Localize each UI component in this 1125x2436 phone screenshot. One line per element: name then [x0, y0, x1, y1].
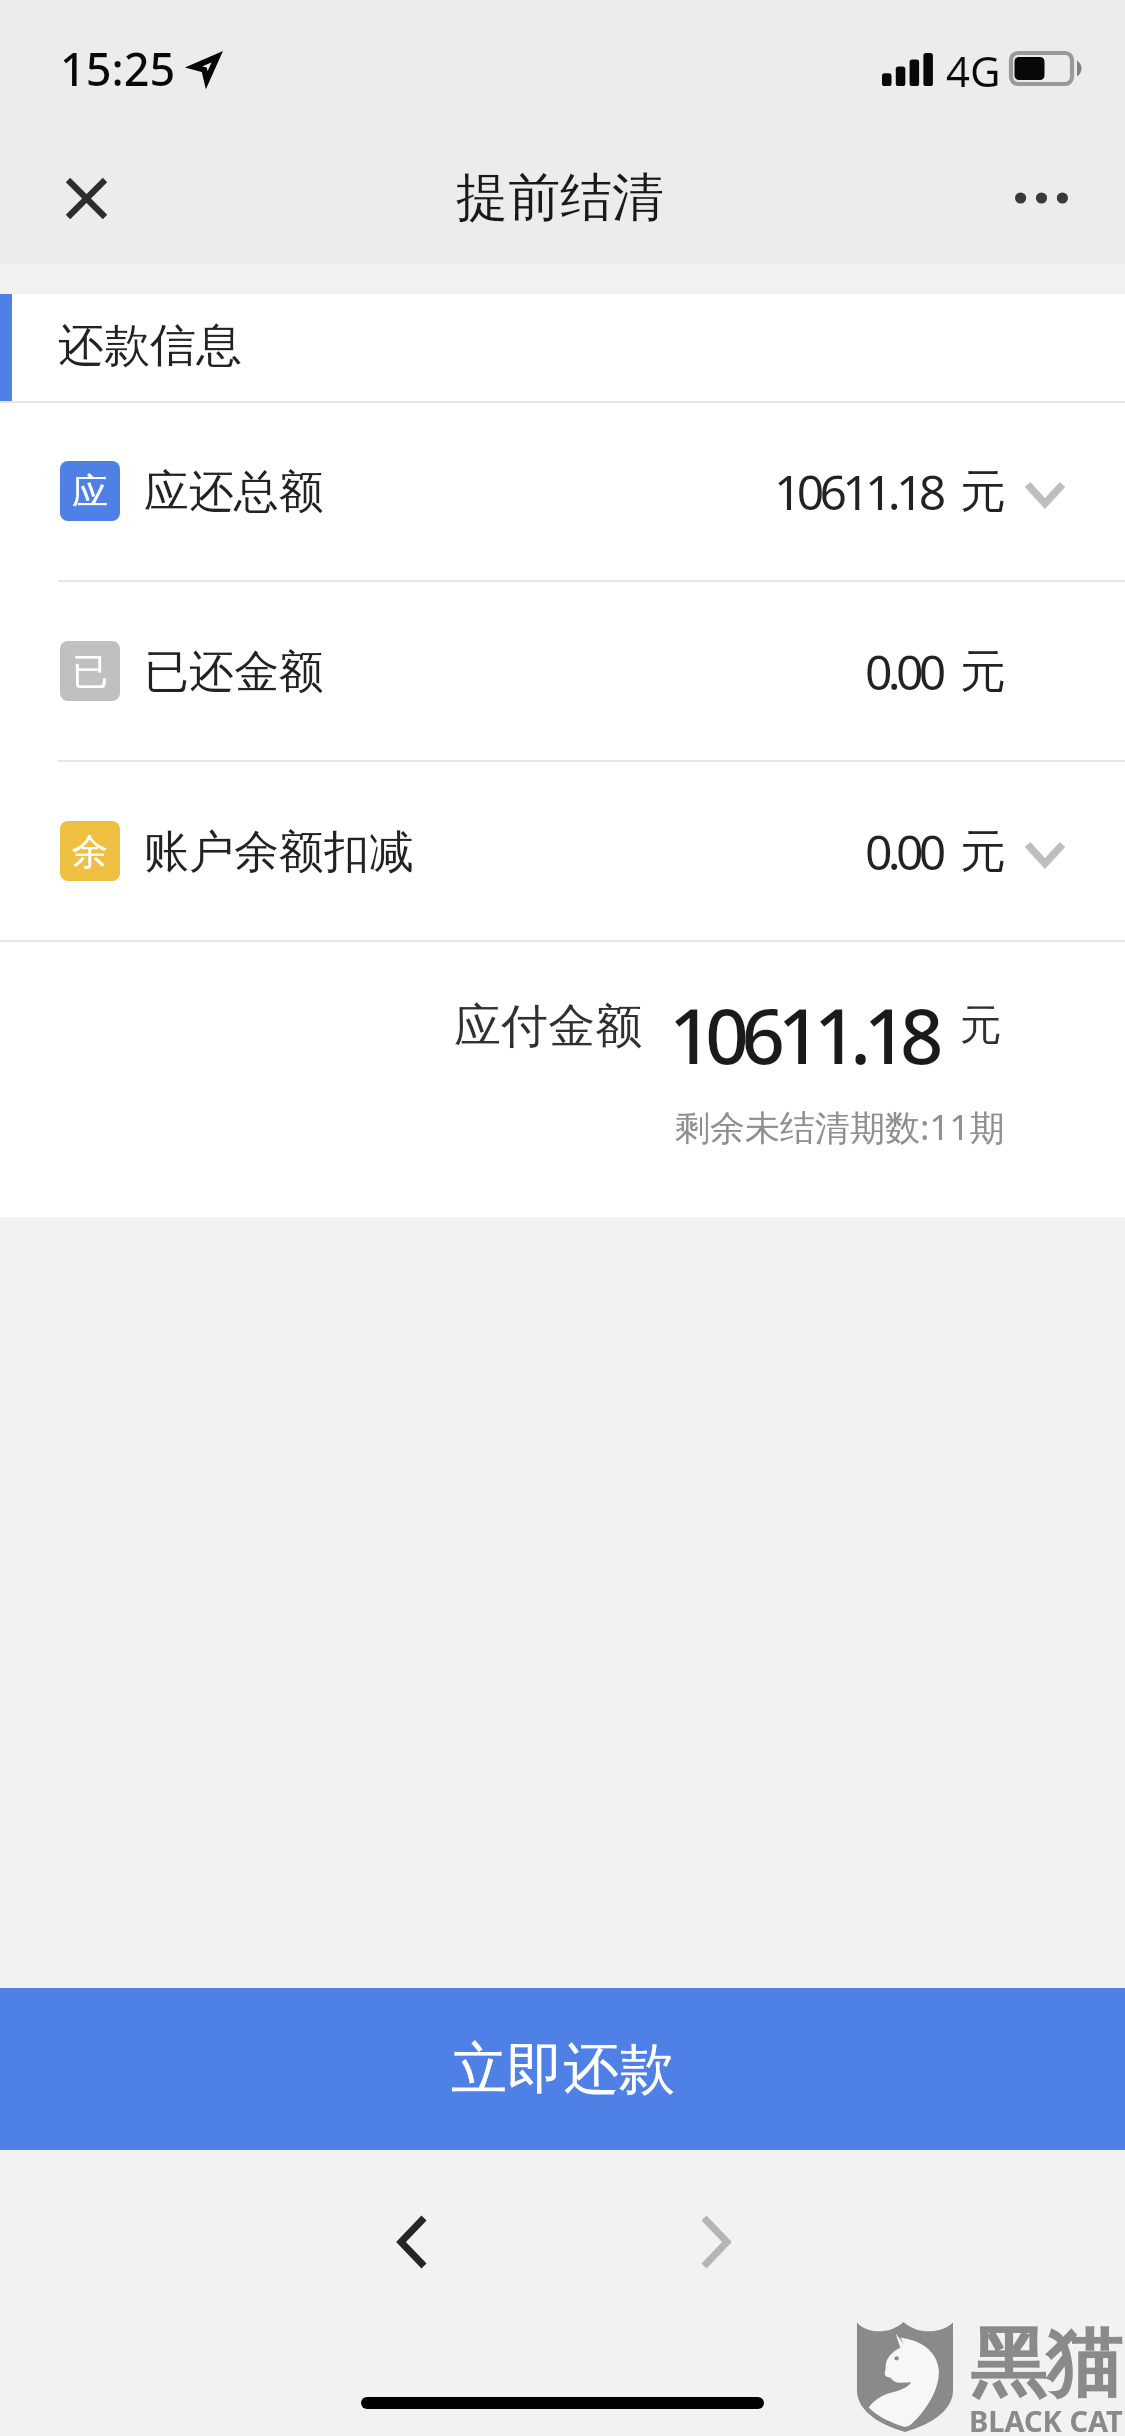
staticText: 应还总额: [144, 464, 324, 521]
staticText: 元: [960, 463, 1006, 521]
button[interactable]: 已: [0, 581, 1125, 761]
staticText: 元: [960, 643, 1006, 701]
button[interactable]: Close: [40, 152, 132, 244]
staticText: 已: [72, 649, 108, 694]
staticText: 元: [960, 999, 1002, 1052]
staticText: 10611.18: [669, 983, 937, 1087]
staticText: 10611.18: [774, 459, 942, 524]
staticText: 元: [960, 823, 1006, 881]
button[interactable]: 余: [0, 761, 1125, 941]
button[interactable]: Forward: [675, 2202, 755, 2282]
staticText: 4G: [946, 42, 1001, 99]
staticText: 应付金额: [454, 997, 642, 1056]
button[interactable]: 立即还款: [0, 1988, 1125, 2150]
staticText: 黑猫: [970, 2316, 1122, 2412]
staticText: 15:25: [60, 38, 176, 99]
button[interactable]: More options: [997, 154, 1085, 242]
staticText: 已还金额: [144, 644, 324, 701]
staticText: 0.00: [865, 639, 942, 704]
staticText: 0.00: [865, 819, 942, 884]
staticText: 应: [72, 469, 108, 514]
button[interactable]: Back: [372, 2202, 452, 2282]
staticText: 账户余额扣减: [144, 824, 414, 881]
staticText: 余: [72, 829, 108, 874]
button[interactable]: 应: [0, 401, 1125, 581]
staticText: BLACK CAT: [969, 2401, 1123, 2436]
staticText: 剩余未结清期数:11期: [675, 1103, 1005, 1151]
staticText: 提前结清: [456, 165, 664, 231]
staticText: 还款信息: [58, 317, 242, 375]
staticText: 立即还款: [451, 2034, 675, 2105]
